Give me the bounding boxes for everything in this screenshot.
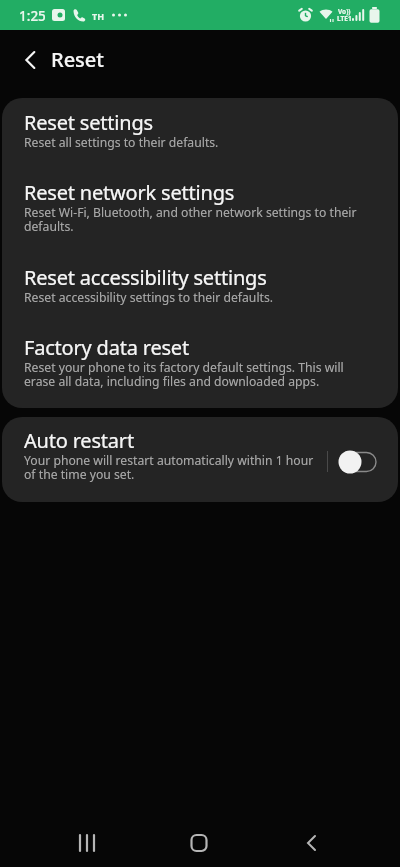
staticText: Auto restart (24, 427, 134, 454)
button[interactable] (281, 819, 341, 867)
button[interactable] (169, 819, 229, 867)
staticText: Reset (51, 46, 104, 73)
staticText: Reset all settings to their defaults. (24, 134, 374, 151)
staticText: Reset accessibility settings (24, 264, 267, 291)
staticText: Your phone will restart automatically wi… (24, 452, 324, 483)
button[interactable]: Reset network settings (2, 168, 398, 253)
staticText: Factory data reset (24, 334, 189, 361)
button[interactable] (12, 42, 48, 78)
staticText: Reset settings (24, 109, 153, 136)
staticText: Reset accessibility settings to their de… (24, 289, 374, 306)
staticText: Reset your phone to its factory default … (24, 359, 374, 390)
staticText: Reset Wi-Fi, Bluetooth, and other networ… (24, 204, 374, 235)
staticText: Vo)) (338, 7, 351, 16)
staticText: 1:25 (19, 7, 46, 25)
button[interactable] (57, 819, 117, 867)
button[interactable]: Auto restart (2, 417, 398, 502)
button[interactable]: Reset settings (2, 98, 398, 168)
staticText: LTE1 (337, 14, 352, 23)
button[interactable]: Factory data reset (2, 323, 398, 408)
staticText: Reset network settings (24, 179, 235, 206)
staticText: TH (92, 10, 105, 22)
button[interactable]: Reset accessibility settings (2, 253, 398, 323)
